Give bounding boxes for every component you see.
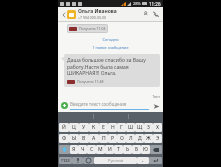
staticText: Ф bbox=[62, 135, 67, 142]
staticText: Ю bbox=[143, 146, 149, 153]
staticText: 28% bbox=[133, 1, 141, 6]
staticText: Й bbox=[62, 124, 66, 131]
button[interactable]: Add contact bbox=[141, 9, 151, 19]
button[interactable] bbox=[59, 145, 70, 154]
button[interactable]: Е bbox=[99, 123, 108, 132]
staticText: О bbox=[120, 135, 124, 142]
staticText: Г bbox=[120, 124, 123, 131]
staticText: Даша большое спасибо за Вашу работу.Наст… bbox=[67, 57, 157, 77]
button[interactable]: Х bbox=[153, 123, 162, 132]
staticText: С bbox=[90, 146, 94, 153]
button[interactable]: Ж bbox=[144, 134, 153, 143]
staticText: К bbox=[92, 124, 96, 131]
button[interactable]: Г bbox=[117, 123, 126, 132]
staticText: Введите текст сообщения bbox=[70, 101, 127, 107]
staticText: У bbox=[82, 124, 86, 131]
staticText: П bbox=[102, 135, 106, 142]
staticText: Ч bbox=[81, 146, 85, 153]
staticText: Э bbox=[156, 135, 160, 142]
staticText: Т bbox=[117, 146, 120, 153]
button[interactable]: И bbox=[105, 145, 114, 154]
button[interactable]: С bbox=[87, 145, 96, 154]
button[interactable]: Enter bbox=[149, 157, 162, 164]
button[interactable]: Введите текст сообщения bbox=[70, 101, 149, 110]
staticText: Текст bbox=[58, 95, 160, 99]
staticText: Е bbox=[102, 124, 105, 131]
staticText: З bbox=[147, 124, 150, 131]
button[interactable]: . bbox=[137, 157, 149, 164]
button[interactable]: Ц bbox=[69, 123, 79, 132]
staticText: Ь bbox=[126, 146, 130, 153]
staticText: +7 904 000-00-00 bbox=[78, 15, 107, 20]
staticText: В bbox=[82, 135, 86, 142]
button[interactable]: Ч bbox=[78, 145, 87, 154]
button[interactable]: Ю bbox=[141, 145, 150, 154]
button[interactable]: В bbox=[79, 134, 89, 143]
staticText: И bbox=[108, 146, 112, 153]
staticText: Русский bbox=[108, 158, 124, 163]
staticText: Получено 11:48 bbox=[77, 79, 104, 84]
button[interactable]: А bbox=[89, 134, 99, 143]
button[interactable]: Ы bbox=[69, 134, 79, 143]
staticText: Л bbox=[129, 135, 133, 142]
button[interactable]: Ь bbox=[123, 145, 132, 154]
staticText: 1 новое сообщение bbox=[61, 45, 160, 50]
staticText: Ольга Иванова bbox=[78, 8, 117, 15]
button[interactable]: Л bbox=[126, 134, 135, 143]
staticText: А bbox=[92, 135, 96, 142]
staticText: Ж bbox=[146, 135, 151, 142]
button[interactable]: Т bbox=[114, 145, 123, 154]
staticText: Х bbox=[156, 124, 160, 131]
button[interactable]: Я bbox=[70, 145, 78, 154]
button[interactable]: Call bbox=[151, 9, 161, 19]
staticText: Б bbox=[135, 146, 139, 153]
staticText: Я bbox=[72, 146, 76, 153]
button[interactable]: П bbox=[99, 134, 108, 143]
staticText: 11:26 bbox=[149, 1, 161, 7]
staticText: Получено 11:04 bbox=[79, 26, 106, 31]
staticText: Ы bbox=[72, 135, 77, 142]
staticText: Ш bbox=[128, 124, 134, 131]
button[interactable]: О bbox=[117, 134, 126, 143]
button[interactable]: Backspace bbox=[150, 145, 162, 154]
button[interactable]: Send bbox=[151, 101, 161, 111]
button[interactable]: Р bbox=[108, 134, 117, 143]
staticText: Р bbox=[111, 135, 115, 142]
button[interactable]: Э bbox=[153, 134, 162, 143]
button[interactable]: Attach bbox=[60, 101, 69, 110]
staticText: Ц bbox=[72, 124, 76, 131]
staticText: Д bbox=[138, 135, 142, 142]
staticText: Щ bbox=[137, 124, 143, 131]
button[interactable]: Русский bbox=[94, 157, 137, 164]
button[interactable]: Б bbox=[132, 145, 141, 154]
staticText: М bbox=[98, 146, 103, 153]
staticText: ?123 bbox=[61, 158, 70, 163]
button[interactable]: З bbox=[144, 123, 153, 132]
staticText: Н bbox=[111, 124, 115, 131]
staticText: Сегодня bbox=[61, 37, 160, 42]
button[interactable]: Back bbox=[60, 11, 67, 18]
button[interactable]: К bbox=[89, 123, 99, 132]
button[interactable]: ?123 bbox=[59, 157, 72, 164]
button[interactable]: Д bbox=[135, 134, 144, 143]
button[interactable]: Н bbox=[108, 123, 117, 132]
button[interactable]: М bbox=[96, 145, 105, 154]
button[interactable]: Й bbox=[59, 123, 69, 132]
staticText: . bbox=[142, 157, 144, 164]
button[interactable]: Emoji bbox=[83, 157, 94, 164]
button[interactable]: Щ bbox=[135, 123, 144, 132]
button[interactable]: Ф bbox=[59, 134, 69, 143]
button[interactable]: Ш bbox=[126, 123, 135, 132]
button[interactable]: У bbox=[79, 123, 89, 132]
button[interactable]: Voice input bbox=[72, 157, 83, 164]
